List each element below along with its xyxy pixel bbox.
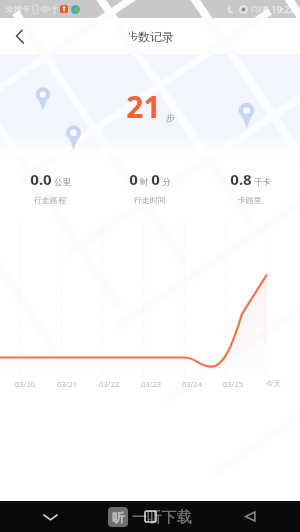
staticText: 行走路程 bbox=[34, 195, 66, 205]
staticText: 今天 bbox=[266, 379, 281, 388]
staticText: 03/20 bbox=[15, 379, 35, 389]
staticText: 听 bbox=[112, 510, 124, 525]
staticText: 0 bbox=[151, 169, 160, 189]
staticText: 一听下载 bbox=[132, 508, 192, 527]
staticText: 0 bbox=[129, 169, 138, 189]
staticText: 03/21 bbox=[57, 379, 77, 389]
staticText: 分 bbox=[162, 177, 171, 188]
button[interactable]: 最近任务 bbox=[200, 501, 300, 532]
staticText: 未插卡 bbox=[6, 4, 30, 14]
staticText: 卡路里 bbox=[238, 195, 262, 205]
staticText: 03/22 bbox=[99, 379, 119, 389]
button[interactable]: 主屏幕 bbox=[100, 501, 200, 532]
button[interactable]: 返回 bbox=[0, 18, 40, 54]
staticText: 0.8 bbox=[230, 169, 252, 189]
staticText: 21 bbox=[126, 86, 161, 127]
staticText: (5)) bbox=[251, 4, 262, 14]
staticText: 03/25 bbox=[223, 379, 243, 389]
staticText: 步 bbox=[166, 112, 175, 123]
staticText: 0.0 bbox=[30, 169, 52, 189]
staticText: 千卡 bbox=[254, 177, 271, 188]
staticText: 行走时间 bbox=[134, 195, 166, 205]
button[interactable]: 返回 bbox=[0, 501, 100, 532]
staticText: 步数记录 bbox=[126, 29, 174, 44]
staticText: 时 bbox=[140, 177, 149, 188]
staticText: 公里 bbox=[54, 177, 71, 188]
staticText: 19:22 bbox=[271, 3, 295, 15]
staticText: 03/24 bbox=[182, 379, 202, 389]
staticText: 03/23 bbox=[141, 379, 161, 389]
